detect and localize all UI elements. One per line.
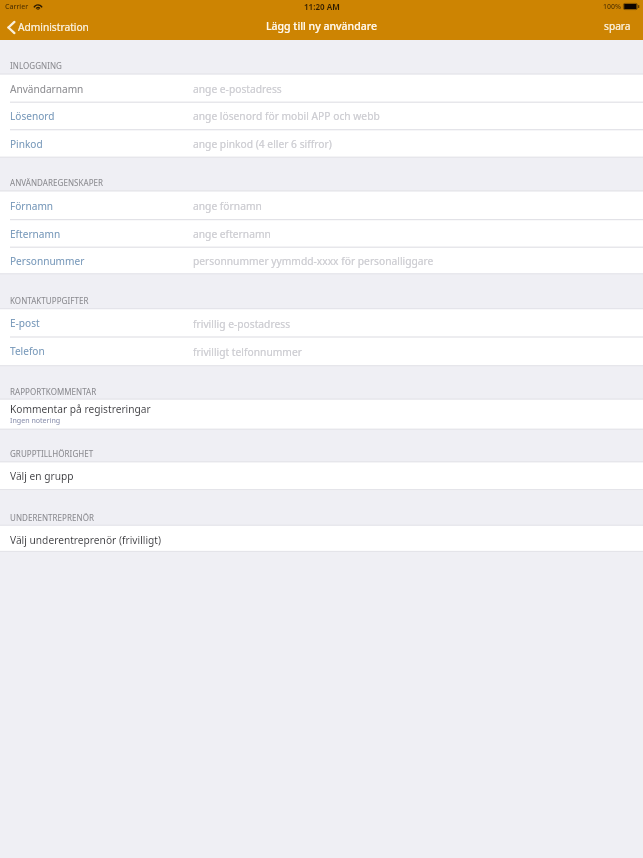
staticText: spara [604,19,631,33]
other: Battery full [623,3,639,10]
button[interactable] [0,102,643,130]
staticText: Välj underentreprenör (frivilligt) [10,533,162,547]
button[interactable] [0,309,643,337]
staticText: frivillig e-postadress [193,317,291,331]
other: Wi-Fi [33,2,43,10]
button[interactable] [0,337,643,365]
staticText: INLOGGNING [10,60,62,71]
staticText: ange efternamn [193,227,271,241]
button[interactable] [0,75,643,103]
staticText: Användarnamn [10,82,84,96]
other: Back [7,21,15,34]
staticText: Carrier [5,2,29,12]
button[interactable]: Back [0,17,97,37]
staticText: KONTAKTUPPGIFTER [10,295,89,306]
staticText: personnummer yymmdd-xxxx för personallig… [193,254,434,268]
button[interactable] [0,130,643,157]
staticText: Pinkod [10,137,43,151]
staticText: GRUPPTILLHÖRIGHET [10,448,94,459]
staticText: Ingen notering [10,415,61,425]
staticText: frivilligt telfonnummer [193,345,302,359]
staticText: Kommentar på registreringar [10,402,151,416]
staticText: E-post [10,316,40,330]
staticText: Personnummer [10,254,85,268]
staticText: ange lösenord för mobil APP och webb [193,109,380,123]
staticText: 100% [603,2,621,12]
staticText: ANVÄNDAREGENSKAPER [10,177,104,188]
button[interactable] [0,247,643,273]
button[interactable] [0,219,643,247]
staticText: ange pinkod (4 eller 6 siffror) [193,137,332,151]
staticText: RAPPORTKOMMENTAR [10,386,97,397]
staticText: Välj en grupp [10,469,74,483]
staticText: Efternamn [10,227,61,241]
button[interactable] [0,400,643,429]
button[interactable] [0,191,643,219]
staticText: Lösenord [10,109,55,123]
button[interactable]: spara [592,15,643,37]
staticText: ange e-postadress [193,82,282,96]
staticText: Telefon [10,344,45,358]
staticText: UNDERENTREPRENÖR [10,512,94,523]
button[interactable] [0,462,643,489]
staticText: Lägg till ny användare [266,19,377,33]
staticText: Förnamn [10,199,54,213]
staticText: 11:20 AM [304,1,340,12]
staticText: ange förnamn [193,199,262,213]
button[interactable] [0,526,643,551]
staticText: Administration [18,20,89,34]
